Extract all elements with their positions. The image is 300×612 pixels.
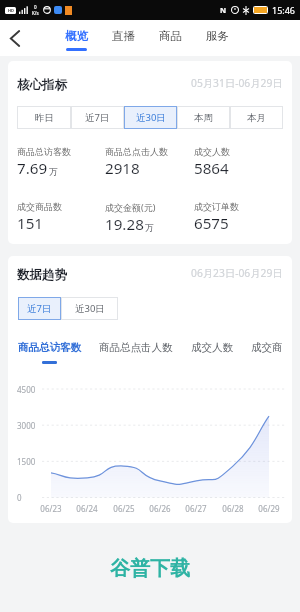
button[interactable]: 概览 (53, 20, 100, 56)
staticText: 成交订单数 (194, 201, 239, 212)
staticText: 15:46 (272, 4, 296, 16)
staticText: 近30日 (75, 302, 105, 315)
staticText: 06月23日-06月29日 (191, 266, 283, 280)
staticText: 06/26 (149, 503, 171, 514)
button[interactable]: 昨日 (17, 106, 71, 129)
staticText: 0 (17, 492, 22, 503)
button[interactable]: 商品总点击人数 (99, 341, 173, 364)
button[interactable]: 成交人数 (191, 341, 233, 364)
staticText: 7.69 (17, 158, 48, 179)
staticText: 06/28 (222, 503, 244, 514)
staticText: 4500 (17, 384, 36, 395)
staticText: 0 (34, 4, 37, 10)
button[interactable]: 近7日 (71, 106, 124, 129)
staticText: 2918 (105, 158, 140, 179)
staticText: 商品总访客数 (17, 146, 71, 157)
staticText: 万 (145, 222, 154, 233)
staticText: 3000 (17, 420, 36, 431)
staticText: HD (8, 8, 14, 13)
staticText: 5864 (194, 158, 229, 179)
staticText: 06/23 (40, 503, 62, 514)
staticText: 成交商品数 (17, 201, 62, 212)
button[interactable]: 近7日 (18, 297, 61, 320)
staticText: 151 (17, 213, 44, 234)
staticText: K/s (32, 10, 39, 16)
button[interactable]: 商品 (147, 20, 194, 56)
staticText: 核心指标 (17, 77, 67, 93)
staticText: 成交商 (251, 341, 283, 354)
staticText: 05月31日-06月29日 (191, 76, 283, 90)
staticText: 1500 (17, 456, 36, 467)
button[interactable]: 近30日 (61, 297, 118, 320)
staticText: 成交人数 (194, 146, 230, 157)
staticText: 近7日 (27, 302, 52, 315)
staticText: 成交人数 (191, 341, 233, 354)
staticText: 本月 (247, 112, 266, 124)
staticText: 谷普下载 (110, 556, 190, 581)
button[interactable]: 本月 (230, 106, 283, 129)
staticText: 商品 (159, 29, 182, 43)
staticText: 成交金额(元) (105, 201, 156, 213)
button[interactable]: 直播 (100, 20, 147, 56)
staticText: 万 (49, 166, 58, 177)
button[interactable]: Back (0, 20, 32, 56)
staticText: 本周 (194, 112, 213, 124)
staticText: 商品总访客数 (18, 341, 81, 354)
button[interactable]: 近30日 (124, 106, 177, 129)
staticText: 06/29 (258, 503, 280, 514)
staticText: 商品总点击人数 (99, 341, 173, 354)
staticText: 6575 (194, 213, 229, 234)
staticText: N (220, 5, 227, 15)
staticText: 概览 (65, 29, 88, 43)
staticText: 近7日 (85, 111, 110, 124)
staticText: 昨日 (35, 112, 54, 124)
button[interactable]: 商品总访客数 (18, 341, 81, 364)
staticText: 数据趋势 (17, 267, 67, 283)
staticText: 19.28 (105, 214, 144, 235)
button[interactable]: 成交商 (251, 341, 283, 364)
staticText: 服务 (206, 29, 229, 43)
button[interactable]: 服务 (194, 20, 241, 56)
staticText: 商品总点击人数 (105, 146, 168, 157)
staticText: 06/25 (113, 503, 135, 514)
staticText: 近30日 (136, 111, 166, 124)
staticText: 06/27 (185, 503, 207, 514)
staticText: 直播 (112, 29, 135, 43)
button[interactable]: 本周 (177, 106, 230, 129)
staticText: 06/24 (76, 503, 98, 514)
